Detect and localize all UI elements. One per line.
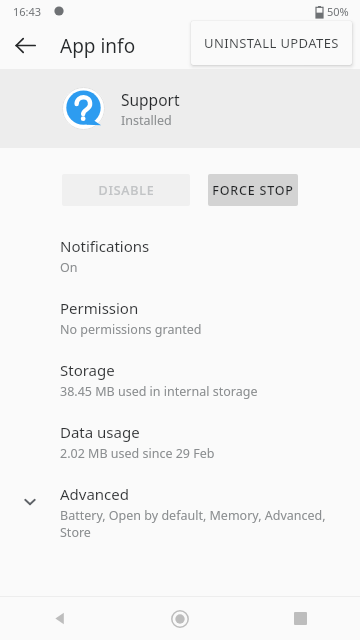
button[interactable]: Back [0, 597, 120, 640]
staticText: FORCE STOP [212, 182, 294, 199]
button[interactable]: UNINSTALL UPDATES [191, 21, 352, 65]
staticText: DISABLE [98, 182, 155, 199]
staticText: On [60, 259, 78, 276]
button[interactable]: FORCE STOP [208, 174, 298, 206]
staticText: Data usage [60, 422, 140, 442]
staticText: Notifications [60, 236, 150, 256]
button[interactable]: Storage [0, 353, 360, 415]
staticText: Permission [60, 298, 139, 318]
staticText: Support [121, 89, 180, 110]
button[interactable]: Back [1, 22, 49, 69]
button[interactable]: Advanced [0, 477, 360, 539]
staticText: UNINSTALL UPDATES [204, 34, 339, 52]
staticText: No permissions granted [60, 321, 202, 338]
staticText: Battery, Open by default, Memory, Advanc… [60, 507, 344, 539]
button[interactable]: Home [120, 597, 240, 640]
button[interactable]: Notifications [0, 229, 360, 291]
button[interactable]: Data usage [0, 415, 360, 477]
staticText: App info [60, 33, 136, 59]
button[interactable]: DISABLE [62, 174, 190, 206]
staticText: Installed [121, 112, 172, 129]
staticText: 38.45 MB used in internal storage [60, 383, 258, 400]
staticText: Advanced [60, 484, 130, 504]
button[interactable]: Recent apps [240, 597, 360, 640]
button[interactable]: Support [0, 69, 360, 148]
staticText: 16:43 [13, 4, 42, 19]
staticText: Storage [60, 360, 115, 380]
staticText: 50% [327, 4, 349, 19]
button[interactable]: Permission [0, 291, 360, 353]
staticText: 2.02 MB used since 29 Feb [60, 445, 215, 462]
